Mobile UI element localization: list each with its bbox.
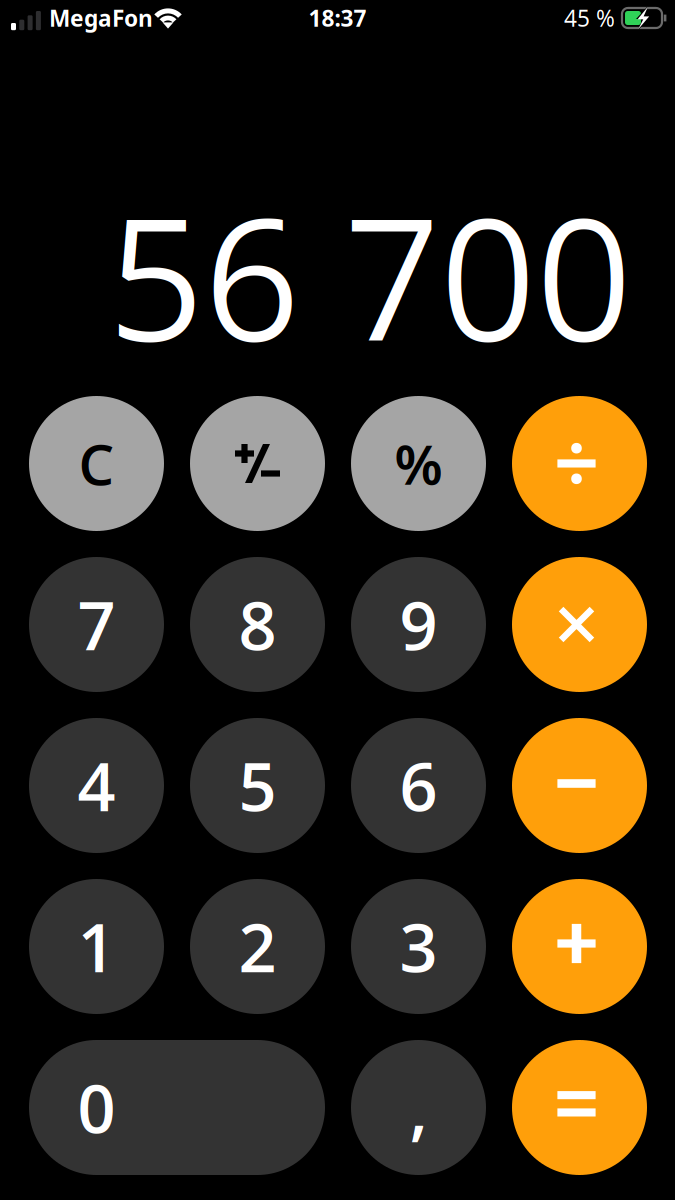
button[interactable]: 4 xyxy=(29,718,164,853)
staticText: C xyxy=(78,425,114,502)
button[interactable]: 9 xyxy=(351,557,486,692)
staticText: 7 xyxy=(77,579,115,670)
staticText: 6 xyxy=(399,740,437,831)
staticText: 4 xyxy=(77,740,115,831)
staticText: 0 xyxy=(77,1062,115,1153)
button[interactable]: Zero xyxy=(29,1040,325,1175)
button[interactable]: Equals xyxy=(512,1040,647,1175)
staticText: , xyxy=(409,1062,427,1153)
button[interactable]: 7 xyxy=(29,557,164,692)
button[interactable]: Clear xyxy=(29,396,164,531)
button[interactable]: Multiply xyxy=(512,557,647,692)
staticText: 56 700 xyxy=(108,161,632,390)
button[interactable]: Percent xyxy=(351,396,486,531)
button[interactable]: Plus minus xyxy=(190,396,325,531)
staticText: 18:37 xyxy=(308,3,366,33)
button[interactable]: 5 xyxy=(190,718,325,853)
button[interactable]: 3 xyxy=(351,879,486,1014)
button[interactable]: Subtract xyxy=(512,718,647,853)
staticText: 45 % xyxy=(564,3,615,33)
staticText: 8 xyxy=(238,579,276,670)
staticText: 9 xyxy=(399,579,437,670)
button[interactable]: , xyxy=(351,1040,486,1175)
staticText: % xyxy=(394,426,442,501)
button[interactable]: 6 xyxy=(351,718,486,853)
staticText: 2 xyxy=(238,901,276,992)
button[interactable]: Divide xyxy=(512,396,647,531)
button[interactable]: Add xyxy=(512,879,647,1014)
button[interactable]: 1 xyxy=(29,879,164,1014)
staticText: 1 xyxy=(77,901,115,992)
staticText: 5 xyxy=(238,740,276,831)
staticText: MegaFon xyxy=(49,3,153,33)
button[interactable]: 2 xyxy=(190,879,325,1014)
staticText: 3 xyxy=(399,901,437,992)
button[interactable]: 8 xyxy=(190,557,325,692)
